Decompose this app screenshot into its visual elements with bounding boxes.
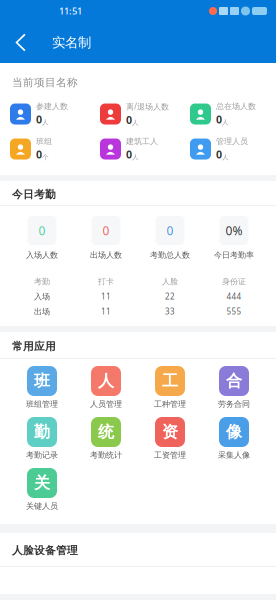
staticText: 444 bbox=[226, 291, 241, 302]
staticText: 11 bbox=[101, 291, 111, 302]
staticText: 考勤总人数 bbox=[150, 250, 190, 260]
staticText: 考勤 bbox=[34, 277, 50, 286]
staticText: 工资管理 bbox=[154, 450, 186, 460]
button[interactable]: 资 bbox=[138, 417, 202, 463]
staticText: 人员管理 bbox=[90, 399, 122, 409]
staticText: 关键人员 bbox=[26, 501, 58, 511]
staticText: 0 bbox=[38, 222, 45, 238]
staticText: 555 bbox=[226, 306, 241, 317]
staticText: 0 bbox=[36, 147, 42, 161]
staticText: 出场人数 bbox=[90, 250, 122, 260]
staticText: 0 bbox=[36, 112, 42, 126]
staticText: 勤 bbox=[34, 422, 50, 442]
staticText: 人 bbox=[222, 153, 229, 161]
staticText: 当前项目名称 bbox=[12, 76, 78, 89]
staticText: 入场人数 bbox=[26, 250, 58, 260]
staticText: 打卡 bbox=[98, 277, 114, 286]
staticText: 像 bbox=[226, 422, 242, 442]
staticText: 工种管理 bbox=[154, 399, 186, 409]
staticText: 合 bbox=[226, 371, 242, 391]
staticText: 参建人数 bbox=[36, 101, 68, 111]
staticText: 资 bbox=[162, 422, 178, 442]
staticText: 人脸设备管理 bbox=[12, 544, 78, 557]
staticText: 今日考勤 bbox=[12, 188, 56, 201]
staticText: 今日考勤率 bbox=[214, 250, 254, 260]
staticText: 入场 bbox=[34, 292, 50, 301]
button[interactable]: 关 bbox=[10, 468, 74, 514]
staticText: 班 bbox=[34, 371, 50, 391]
staticText: 人脸 bbox=[162, 277, 178, 286]
staticText: 采集人像 bbox=[218, 450, 250, 460]
staticText: 0 bbox=[102, 222, 109, 238]
staticText: 22 bbox=[165, 291, 175, 302]
staticText: 0 bbox=[126, 113, 132, 127]
staticText: 统 bbox=[98, 422, 114, 442]
staticText: 0 bbox=[126, 147, 132, 161]
staticText: 人 bbox=[98, 371, 114, 391]
staticText: 工 bbox=[162, 371, 178, 391]
staticText: 离/退场人数 bbox=[126, 101, 169, 112]
staticText: 0 bbox=[166, 222, 173, 238]
staticText: 11:51 bbox=[59, 5, 82, 17]
staticText: 常用应用 bbox=[12, 340, 56, 353]
staticText: 考勤记录 bbox=[26, 450, 58, 460]
staticText: 0 bbox=[216, 112, 222, 126]
staticText: 关 bbox=[34, 473, 50, 493]
button[interactable]: 离/退场人数 bbox=[100, 100, 190, 128]
button[interactable]: Back bbox=[8, 22, 38, 63]
staticText: 出场 bbox=[34, 307, 50, 316]
staticText: 人 bbox=[222, 118, 229, 126]
staticText: 0% bbox=[225, 222, 242, 238]
staticText: 管理人员 bbox=[216, 136, 248, 146]
staticText: 人 bbox=[132, 119, 139, 127]
staticText: 总在场人数 bbox=[216, 101, 256, 111]
staticText: 33 bbox=[165, 306, 175, 317]
staticText: 人 bbox=[132, 153, 139, 161]
button[interactable]: 勤 bbox=[10, 417, 74, 463]
button[interactable]: 参建人数 bbox=[10, 100, 100, 128]
button[interactable]: 合 bbox=[202, 366, 266, 412]
staticText: 考勤统计 bbox=[90, 450, 122, 460]
button[interactable]: 班 bbox=[10, 366, 74, 412]
button[interactable]: 统 bbox=[74, 417, 138, 463]
staticText: 劳务合同 bbox=[218, 399, 250, 409]
staticText: 11 bbox=[101, 306, 111, 317]
staticText: 实名制 bbox=[52, 34, 91, 51]
staticText: 班组 bbox=[36, 136, 52, 146]
button[interactable]: 总在场人数 bbox=[190, 100, 276, 128]
staticText: 班组管理 bbox=[26, 399, 58, 409]
staticText: 建筑工人 bbox=[126, 136, 158, 146]
button[interactable]: 像 bbox=[202, 417, 266, 463]
button[interactable]: 管理人员 bbox=[190, 135, 276, 163]
button[interactable]: 建筑工人 bbox=[100, 135, 190, 163]
staticText: 个 bbox=[42, 153, 49, 161]
staticText: 0 bbox=[216, 147, 222, 161]
button[interactable]: 人 bbox=[74, 366, 138, 412]
button[interactable]: 班组 bbox=[10, 135, 100, 163]
staticText: 人 bbox=[42, 118, 49, 126]
staticText: 身份证 bbox=[222, 277, 246, 286]
button[interactable]: 工 bbox=[138, 366, 202, 412]
